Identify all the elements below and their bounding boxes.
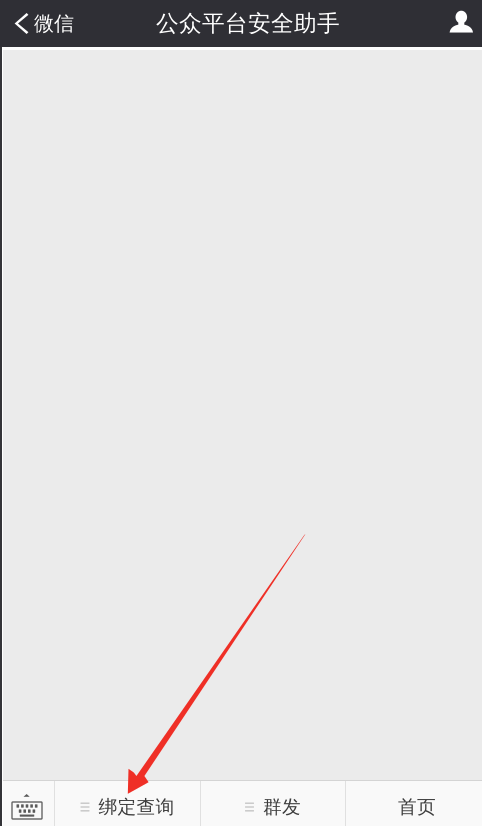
- button[interactable]: 微信: [0, 5, 82, 42]
- button[interactable]: 绑定查询: [55, 781, 200, 826]
- staticText: 公众平台安全助手: [156, 10, 340, 37]
- staticText: 微信: [34, 11, 74, 36]
- staticText: 绑定查询: [98, 795, 174, 818]
- button[interactable]: 群发: [201, 781, 345, 826]
- button[interactable]: Contacts: [438, 7, 482, 39]
- button[interactable]: 首页: [346, 781, 482, 826]
- staticText: 首页: [398, 795, 436, 818]
- button[interactable]: Keyboard: [0, 781, 54, 826]
- staticText: 群发: [263, 795, 301, 818]
